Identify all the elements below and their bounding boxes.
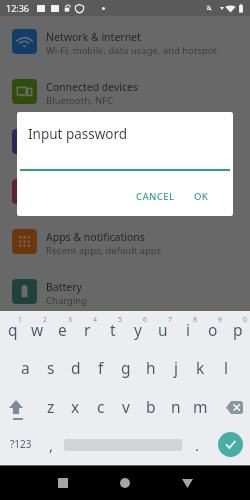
button[interactable]: v [113, 389, 138, 428]
button[interactable]: y [125, 311, 150, 350]
staticText: Recent apps, default apps [46, 244, 162, 257]
staticText: Apps & notifications [46, 230, 145, 244]
button[interactable]: Apps & notifications [0, 216, 250, 266]
staticText: Bluetooth, NFC [46, 94, 114, 107]
staticText: p [233, 319, 243, 340]
button[interactable]: h [138, 350, 163, 389]
staticText: Wi-Fi, mobile, data usage, and hotspot [46, 44, 217, 57]
staticText: , [49, 435, 54, 455]
button[interactable]: Backspace [215, 389, 250, 428]
button[interactable]: p [225, 311, 250, 350]
staticText: m [193, 396, 208, 417]
staticText: t [110, 319, 116, 340]
staticText: . [195, 435, 200, 455]
staticText: v [122, 396, 130, 417]
staticText: Input password [28, 125, 128, 143]
staticText: w [31, 319, 44, 340]
staticText: r [84, 319, 91, 340]
staticText: y [134, 319, 142, 340]
staticText: 6 [143, 315, 148, 325]
staticText: 0 [243, 315, 248, 325]
button[interactable]: s [38, 350, 63, 389]
button[interactable]: Recent apps [32, 466, 94, 500]
button[interactable]: Shift [0, 389, 34, 428]
button[interactable]: ?123 [0, 428, 41, 465]
staticText: o [208, 319, 218, 340]
button[interactable]: e [50, 311, 75, 350]
staticText: d [71, 357, 81, 378]
button[interactable]: b [138, 389, 163, 428]
staticText: l [224, 357, 228, 378]
button[interactable]: . [185, 428, 210, 465]
button[interactable]: Home [94, 466, 156, 500]
staticText: u [158, 319, 168, 340]
staticText: 2 [43, 315, 48, 325]
staticText: CANCEL [136, 190, 175, 203]
button[interactable]: Connected devices [0, 66, 250, 116]
button[interactable]: i [175, 311, 200, 350]
staticText: f [98, 357, 104, 378]
staticText: x [71, 396, 80, 417]
button[interactable]: j [163, 350, 188, 389]
staticText: a [21, 357, 30, 378]
button[interactable]: Enter [218, 432, 243, 457]
button[interactable]: a [13, 350, 38, 389]
button[interactable]: Sound [0, 166, 250, 216]
button[interactable]: OK [190, 185, 213, 208]
staticText: 9 [218, 315, 223, 325]
button[interactable]: d [63, 350, 88, 389]
button[interactable]: w [25, 311, 50, 350]
staticText: Volume, vibration, Do Not Disturb [46, 194, 197, 207]
button[interactable]: m [188, 389, 213, 428]
staticText: j [174, 357, 178, 378]
button[interactable]: x [63, 389, 88, 428]
staticText: Charging [46, 294, 88, 307]
button[interactable]: f [88, 350, 113, 389]
button[interactable]: Display [0, 116, 250, 166]
staticText: OK [194, 190, 209, 203]
staticText: z [47, 396, 55, 417]
staticText: 8 [193, 315, 198, 325]
button[interactable]: Battery [0, 266, 250, 316]
button[interactable]: Back [156, 466, 218, 500]
staticText: Battery [46, 280, 82, 294]
staticText: i [186, 319, 190, 340]
button[interactable]: CANCEL [132, 185, 179, 208]
staticText: 7 [168, 315, 173, 325]
button[interactable]: n [163, 389, 188, 428]
staticText: 1 [18, 315, 23, 325]
button[interactable]: g [113, 350, 138, 389]
staticText: q [8, 319, 18, 340]
staticText: Display [46, 130, 82, 144]
button[interactable]: t [100, 311, 125, 350]
staticText: e [58, 319, 67, 340]
button[interactable]: q [0, 311, 25, 350]
staticText: Connected devices [46, 80, 139, 94]
staticText: h [146, 357, 156, 378]
staticText: k [196, 357, 205, 378]
staticText: 3 [68, 315, 73, 325]
staticText: 5 [118, 315, 123, 325]
button[interactable]: u [150, 311, 175, 350]
staticText: b [146, 396, 156, 417]
staticText: Network & internet [46, 30, 141, 44]
staticText: n [171, 396, 181, 417]
button[interactable]: k [188, 350, 213, 389]
staticText: c [97, 396, 105, 417]
staticText: g [121, 357, 131, 378]
button[interactable]: r [75, 311, 100, 350]
button[interactable]: c [88, 389, 113, 428]
button[interactable]: o [200, 311, 225, 350]
button[interactable]: , [39, 428, 64, 465]
staticText: 12:36 [6, 2, 30, 14]
staticText: s [47, 357, 55, 378]
staticText: 4 [93, 315, 98, 325]
staticText: ?123 [10, 437, 32, 451]
button[interactable]: Network & internet [0, 16, 250, 66]
button[interactable]: l [213, 350, 238, 389]
button[interactable]: z [38, 389, 63, 428]
